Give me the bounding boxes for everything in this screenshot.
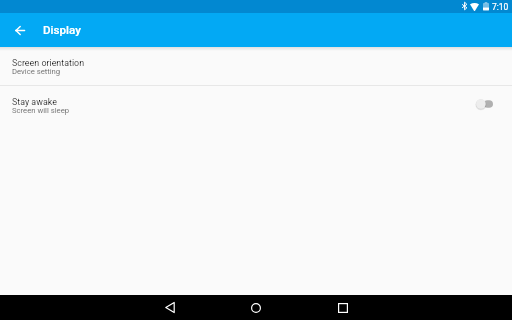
staticText: 7:10 — [492, 2, 509, 12]
staticText: Screen orientation — [12, 58, 85, 68]
staticText: Display — [43, 23, 81, 37]
button[interactable]: Back — [2, 13, 37, 47]
button[interactable]: Recent apps — [329, 295, 356, 320]
button[interactable]: Back — [156, 295, 183, 320]
staticText: Device setting — [12, 67, 61, 76]
staticText: Stay awake — [12, 97, 57, 107]
staticText: Screen will sleep — [12, 106, 70, 115]
button[interactable]: Stay awake — [0, 86, 512, 124]
button[interactable]: Screen orientation — [0, 47, 512, 85]
button[interactable]: Home — [242, 295, 269, 320]
